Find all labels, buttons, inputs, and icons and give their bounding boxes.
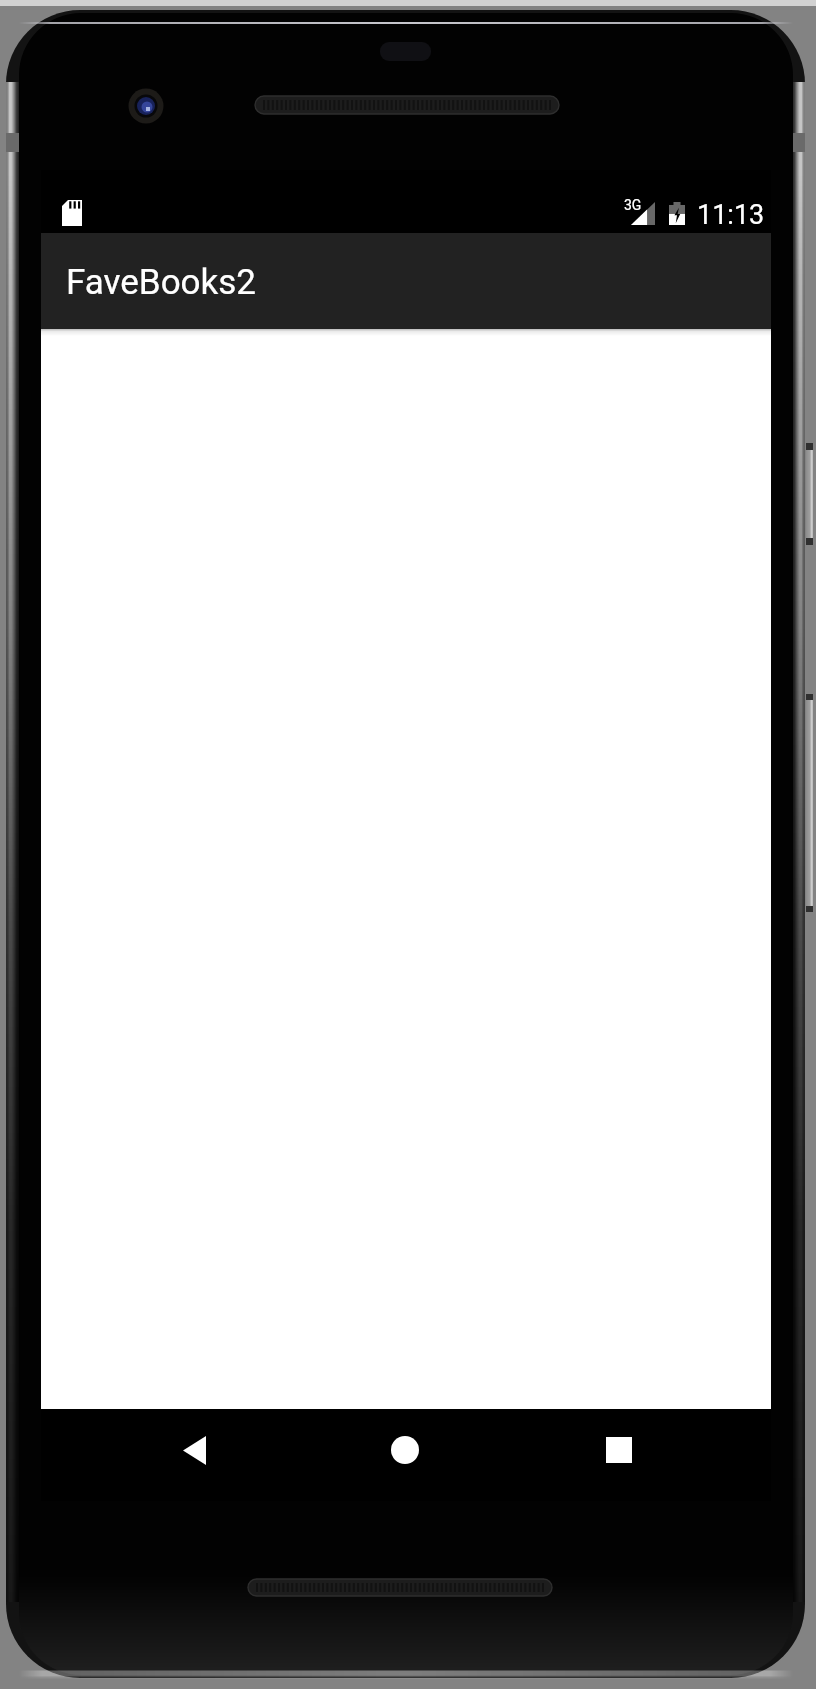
button[interactable]: Back bbox=[161, 1417, 227, 1483]
staticText: FaveBooks2 bbox=[66, 262, 257, 303]
staticText: 11:13 bbox=[697, 199, 765, 231]
staticText: 3G bbox=[624, 197, 642, 213]
button[interactable]: Home bbox=[372, 1417, 438, 1483]
button[interactable]: Recent apps bbox=[586, 1417, 652, 1483]
button[interactable]: FaveBooks2 bbox=[41, 233, 771, 329]
